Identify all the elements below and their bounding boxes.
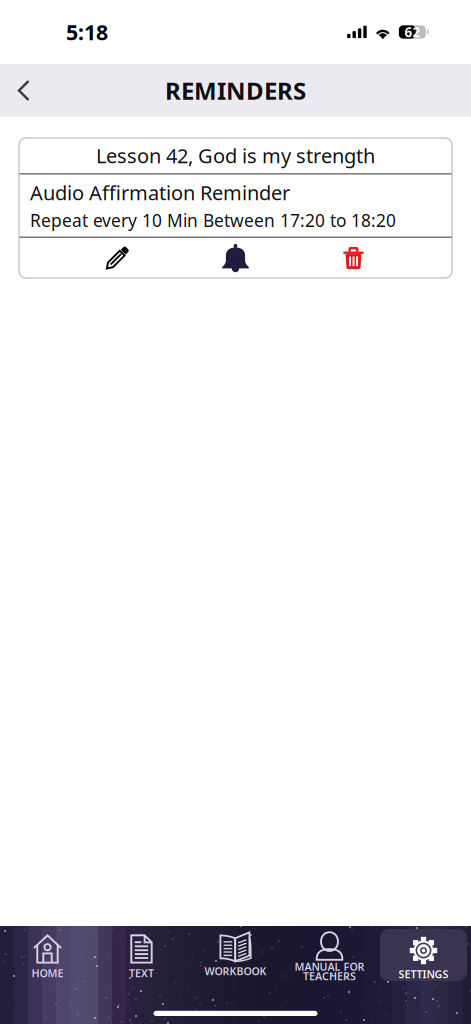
button[interactable]: MANUAL FOR [282,926,376,987]
button[interactable]: Notification settings [176,238,294,278]
staticText: 62 [404,23,420,41]
staticText: TEXT [129,966,154,980]
staticText: WORKBOOK [204,964,266,978]
staticText: MANUAL FOR [294,959,364,974]
staticText: SETTINGS [398,967,448,981]
button[interactable]: WORKBOOK [188,926,282,987]
staticText: Audio Affirmation Reminder [30,179,290,206]
staticText: REMINDERS [165,75,306,106]
button[interactable]: TEXT [94,926,188,990]
staticText: Lesson 42, God is my strength [96,142,375,169]
button[interactable]: HOME [0,926,94,990]
staticText: 5:18 [66,18,108,46]
button[interactable]: Delete reminder [294,238,412,278]
staticText: HOME [31,966,63,980]
staticText: TEACHERS [303,969,356,983]
button[interactable]: SETTINGS [376,926,470,981]
button[interactable]: Edit reminder [58,238,176,278]
staticText: Repeat every 10 Min Between 17:20 to 18:… [30,209,396,232]
button[interactable]: Back [0,64,45,116]
